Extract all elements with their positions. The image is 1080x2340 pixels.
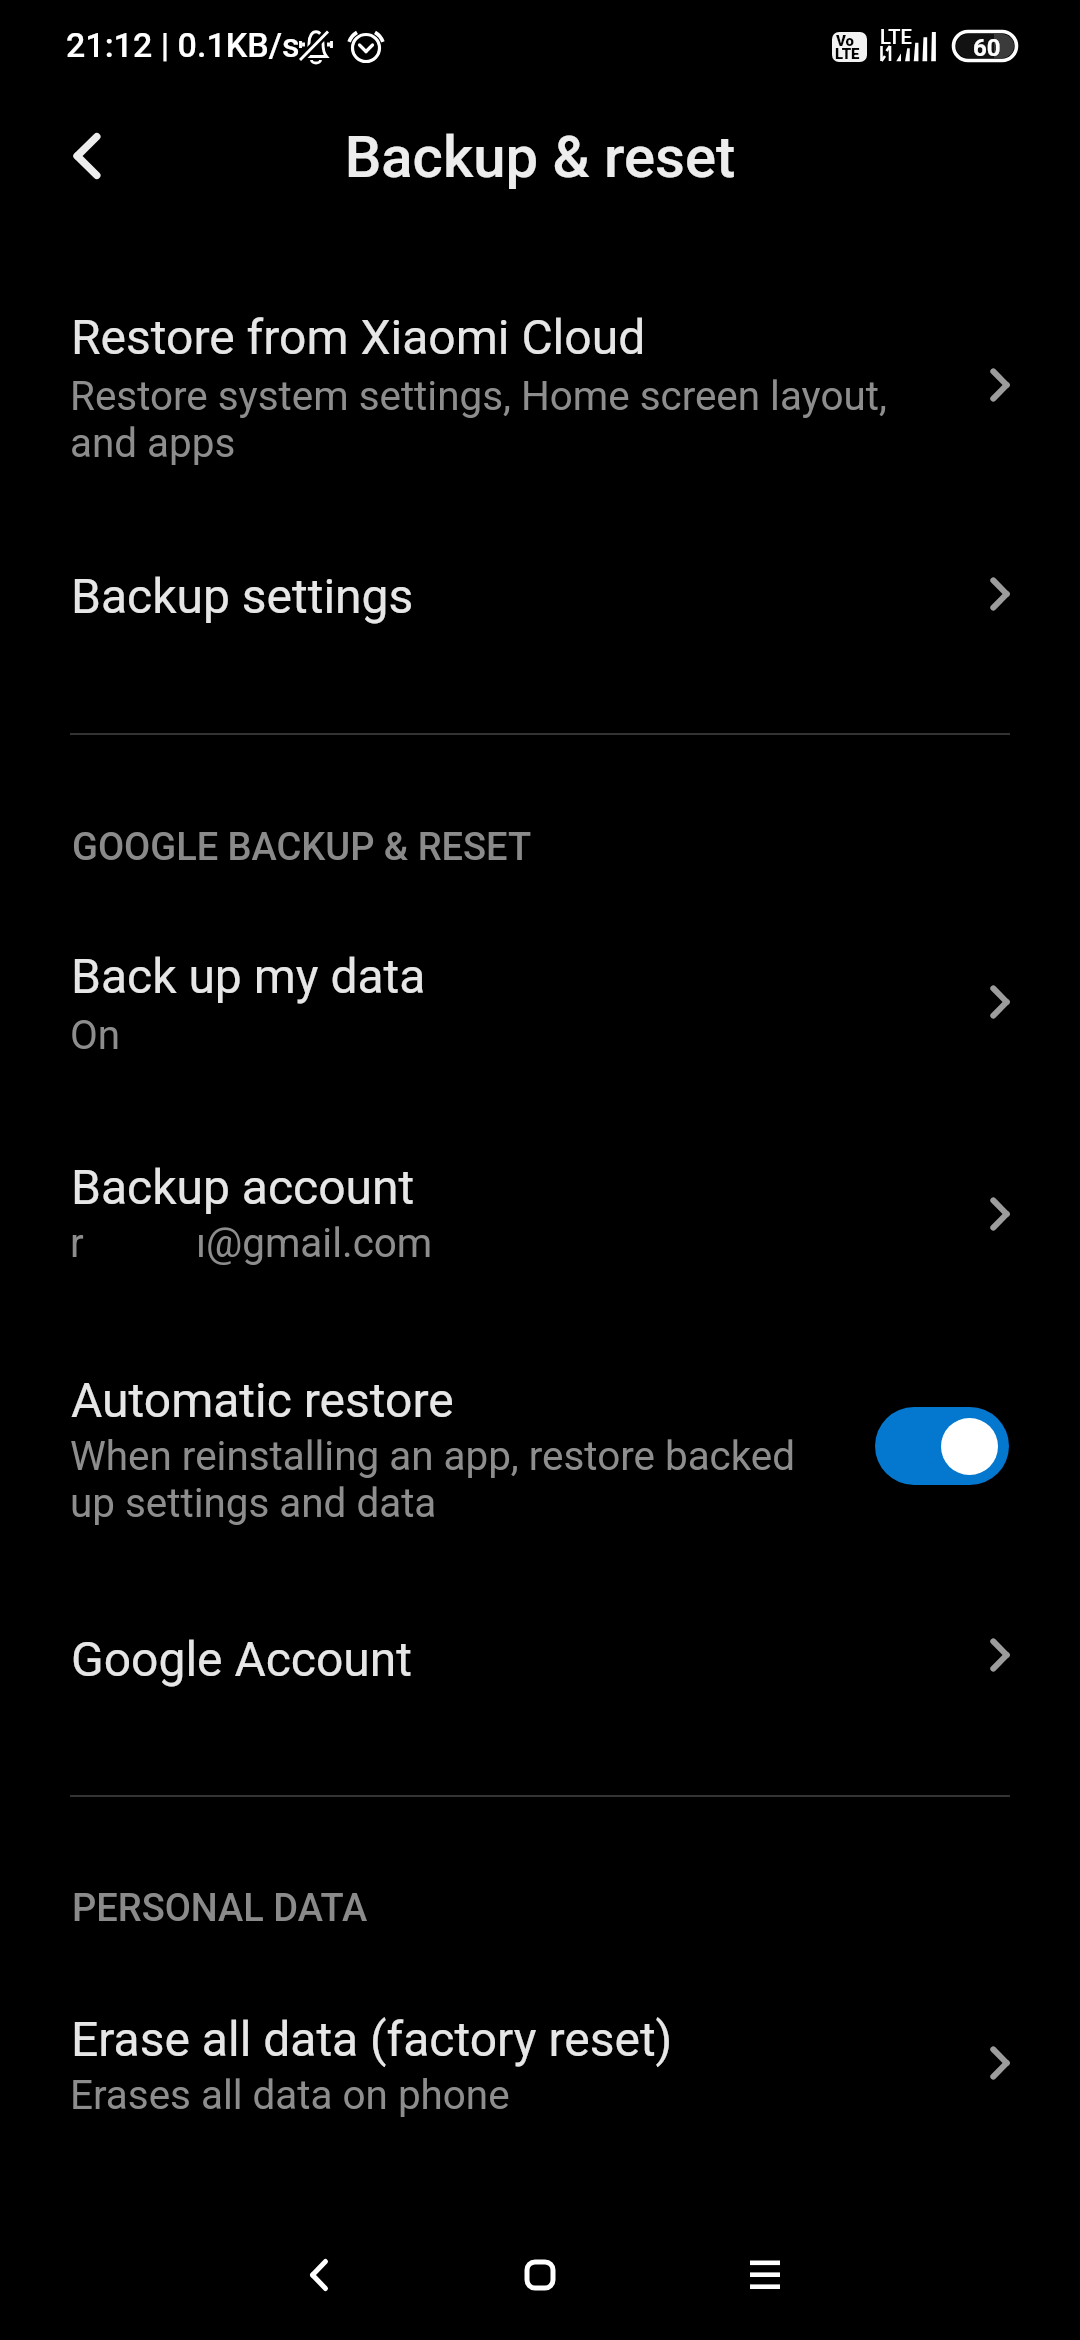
button[interactable]: Back up my data [0, 890, 1080, 1090]
staticText: When reinstalling an app, restore backed… [70, 1433, 796, 1527]
staticText: Erases all data on phone [70, 2072, 510, 2119]
staticText: Restore from Xiaomi Cloud [71, 309, 646, 365]
staticText: Restore system settings, Home screen lay… [70, 373, 887, 467]
staticText: Vo [836, 32, 855, 50]
button[interactable]: Google Account [0, 1570, 1080, 1750]
button[interactable]: Backup settings [0, 500, 1080, 690]
staticText: Backup settings [71, 568, 414, 624]
staticText: Automatic restore [71, 1372, 454, 1428]
button[interactable]: Navigate up [24, 96, 150, 216]
staticText: 21:12 | 0.1KB/s [66, 25, 300, 65]
button[interactable]: Home [480, 2215, 600, 2335]
button[interactable]: Backup account [0, 1100, 1080, 1300]
button[interactable]: Restore from Xiaomi Cloud [0, 232, 1080, 500]
staticText: ı@gmail.com [196, 1220, 433, 1267]
staticText: GOOGLE BACKUP & RESET [72, 825, 532, 870]
staticText: Google Account [71, 1631, 413, 1687]
staticText: LTE [880, 25, 912, 48]
button[interactable]: Automatic restore [0, 1310, 1080, 1560]
staticText: LTE [835, 45, 860, 62]
staticText: On [70, 1012, 121, 1059]
staticText: Erase all data (factory reset) [71, 2011, 673, 2067]
button[interactable]: Recent apps [705, 2215, 825, 2335]
staticText: r [70, 1220, 84, 1267]
staticText: PERSONAL DATA [72, 1886, 368, 1931]
button[interactable]: Erase all data (factory reset) [0, 1950, 1080, 2150]
staticText: Back up my data [71, 948, 426, 1004]
staticText: 60 [973, 34, 1001, 62]
staticText: Backup account [71, 1159, 415, 1215]
staticText: Backup & reset [0, 123, 1080, 191]
button[interactable]: Automatic restore, on [875, 1407, 1009, 1485]
button[interactable]: Back [259, 2215, 379, 2335]
